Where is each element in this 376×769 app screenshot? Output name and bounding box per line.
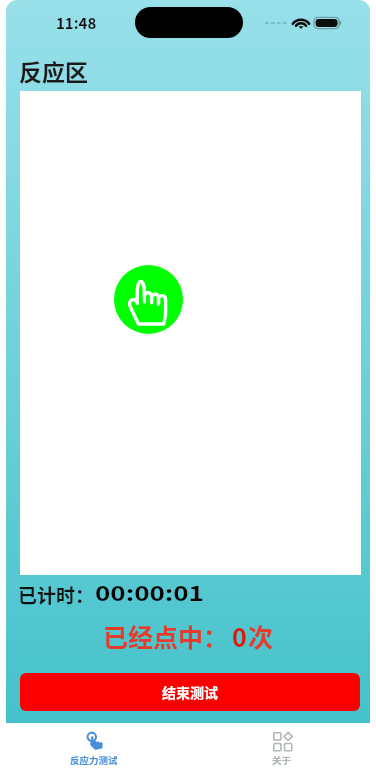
button[interactable]: 关于 xyxy=(188,723,376,767)
staticText: 11:48 xyxy=(56,12,97,34)
staticText: 已计时： xyxy=(18,581,95,609)
staticText: 反应区 xyxy=(19,54,88,87)
button[interactable]: Tap target xyxy=(114,265,183,334)
staticText: 00:00:01 xyxy=(95,578,204,607)
button[interactable]: 结束测试 xyxy=(20,673,360,711)
staticText: 反应力测试 xyxy=(70,753,118,767)
staticText: 0 xyxy=(232,618,247,654)
button[interactable]: 反应力测试 xyxy=(0,723,188,767)
staticText: 关于 xyxy=(272,753,292,767)
staticText: 已经点中： xyxy=(103,618,229,654)
staticText: 结束测试 xyxy=(162,682,218,702)
staticText: 次 xyxy=(248,618,274,654)
